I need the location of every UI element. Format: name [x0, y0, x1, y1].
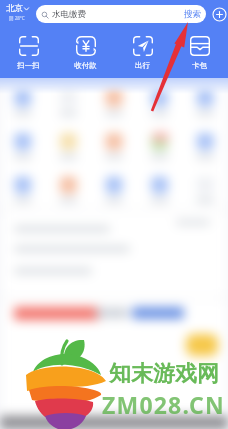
- staticText: 北京: [6, 3, 23, 14]
- staticText: 阴 28°C: [9, 15, 25, 21]
- button[interactable]: 搜索: [183, 9, 202, 20]
- button[interactable]: 收付款: [57, 28, 114, 78]
- staticText: 搜索: [184, 9, 201, 20]
- staticText: 收付款: [74, 61, 97, 70]
- button[interactable]: 水电缴费: [36, 5, 206, 23]
- staticText: 卡包: [192, 61, 207, 70]
- button[interactable]: 扫一扫: [0, 28, 57, 78]
- staticText: 水电缴费: [52, 9, 86, 20]
- button[interactable]: 卡包: [171, 28, 228, 78]
- button[interactable]: 北京: [3, 3, 31, 21]
- button[interactable]: Add: [212, 7, 227, 22]
- staticText: 知末游戏网: [109, 360, 219, 388]
- button[interactable]: 出行: [114, 28, 171, 78]
- staticText: 出行: [135, 61, 150, 70]
- staticText: 扫一扫: [17, 61, 40, 70]
- staticText: ZM028.CN: [102, 389, 225, 420]
